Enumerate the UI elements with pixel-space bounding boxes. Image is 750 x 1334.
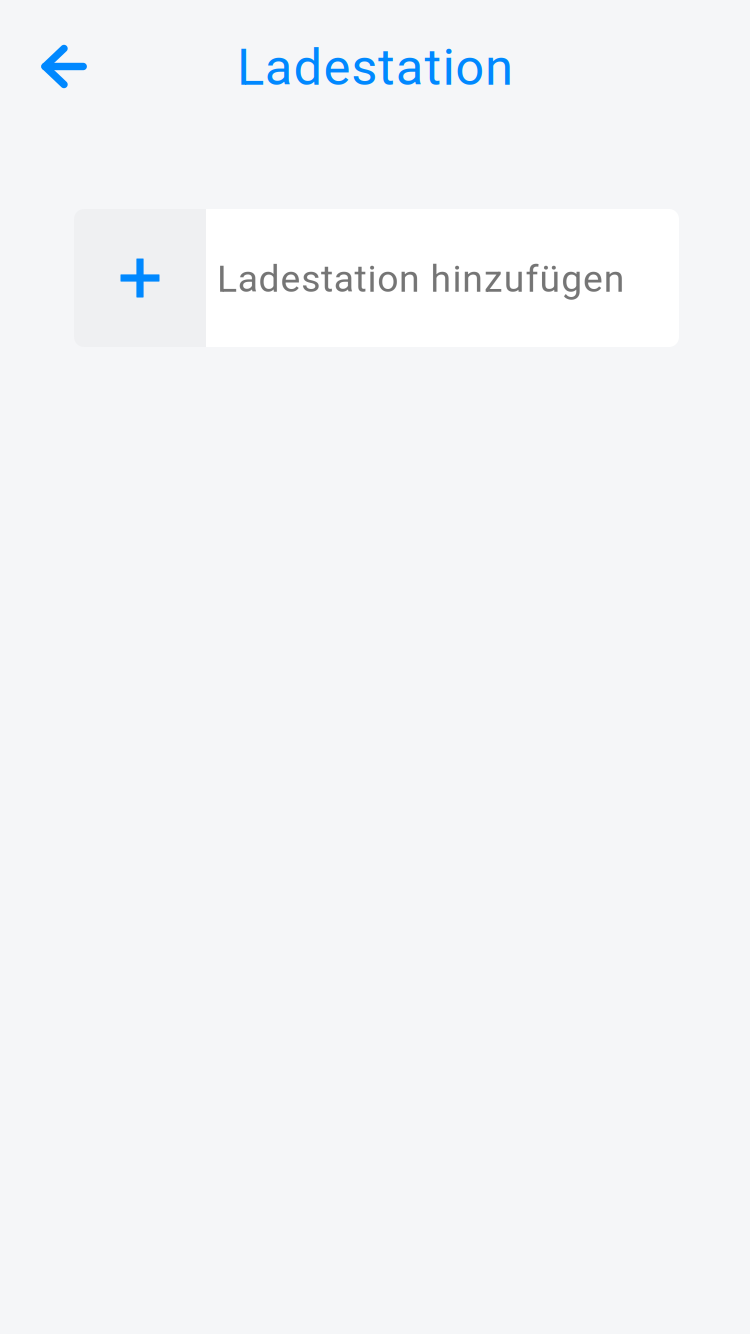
button[interactable]: Back — [23, 16, 109, 116]
button[interactable]: Ladestation hinzufügen — [74, 209, 679, 347]
staticText: Ladestation hinzufügen — [217, 257, 625, 301]
staticText: Ladestation — [237, 38, 513, 97]
